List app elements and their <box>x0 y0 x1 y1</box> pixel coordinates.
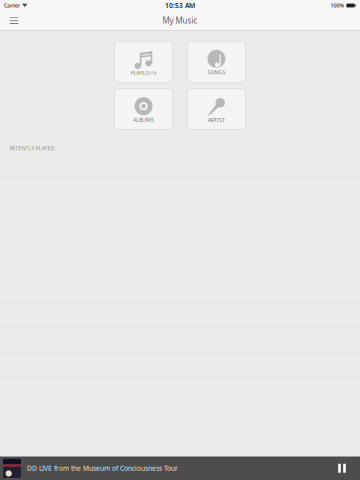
button[interactable]: ALBUMS <box>114 89 173 130</box>
staticText: 100% <box>330 2 344 9</box>
staticText: ARTIST <box>208 116 225 123</box>
staticText: ALBUMS <box>133 116 154 123</box>
staticText: DD LIVE from the Museum of Conciousness … <box>27 464 178 473</box>
staticText: RECENTLY PLAYED <box>10 145 55 152</box>
staticText: SONGS <box>207 69 225 76</box>
button[interactable]: PLAYLISTS <box>114 41 173 82</box>
button[interactable]: SONGS <box>187 41 246 82</box>
staticText: My Music <box>162 15 197 26</box>
button[interactable]: Pause <box>330 456 354 480</box>
staticText: Carrier <box>4 2 20 9</box>
button[interactable]: ARTIST <box>187 89 246 130</box>
button[interactable]: Menu <box>0 11 28 30</box>
staticText: 10:53 AM <box>165 1 195 10</box>
staticText: PLAYLISTS <box>131 69 157 76</box>
